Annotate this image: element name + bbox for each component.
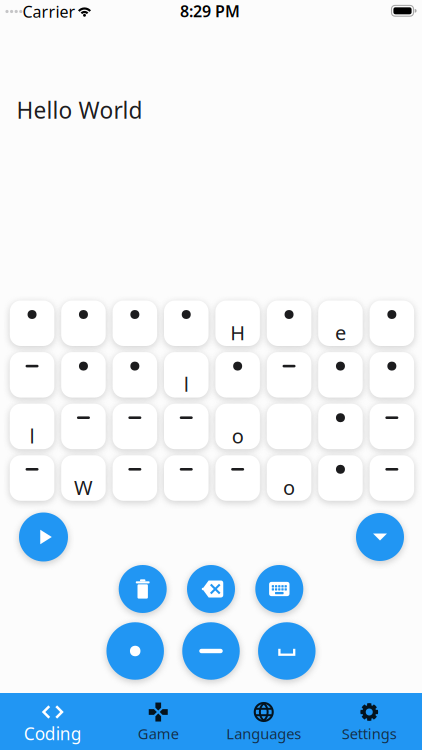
staticText: 8:29 PM — [180, 0, 240, 22]
staticText: Game — [138, 724, 179, 743]
button[interactable]: Settings — [316, 693, 422, 750]
staticText: Hello World — [16, 95, 142, 125]
button[interactable]: Coding — [0, 693, 105, 750]
staticText: Settings — [342, 724, 397, 743]
staticText: Coding — [24, 722, 82, 745]
staticText: Carrier — [22, 1, 75, 22]
button[interactable]: Game — [105, 693, 211, 750]
staticText: H — [230, 319, 245, 346]
button[interactable]: Dot — [106, 622, 164, 680]
button[interactable]: Play — [19, 512, 68, 561]
staticText: Languages — [226, 724, 301, 743]
button[interactable]: Dash — [182, 622, 240, 680]
staticText: l — [30, 422, 35, 449]
staticText: W — [74, 474, 93, 501]
staticText: o — [232, 422, 244, 449]
staticText: l — [184, 371, 189, 397]
button[interactable]: Keyboard — [255, 565, 303, 613]
button[interactable]: Backspace — [187, 565, 235, 613]
staticText: o — [283, 474, 295, 501]
button[interactable]: Options — [356, 513, 404, 561]
button[interactable]: Languages — [211, 693, 316, 750]
staticText: e — [335, 319, 346, 346]
button[interactable]: Delete all — [119, 565, 167, 613]
button[interactable]: Space — [258, 622, 316, 680]
